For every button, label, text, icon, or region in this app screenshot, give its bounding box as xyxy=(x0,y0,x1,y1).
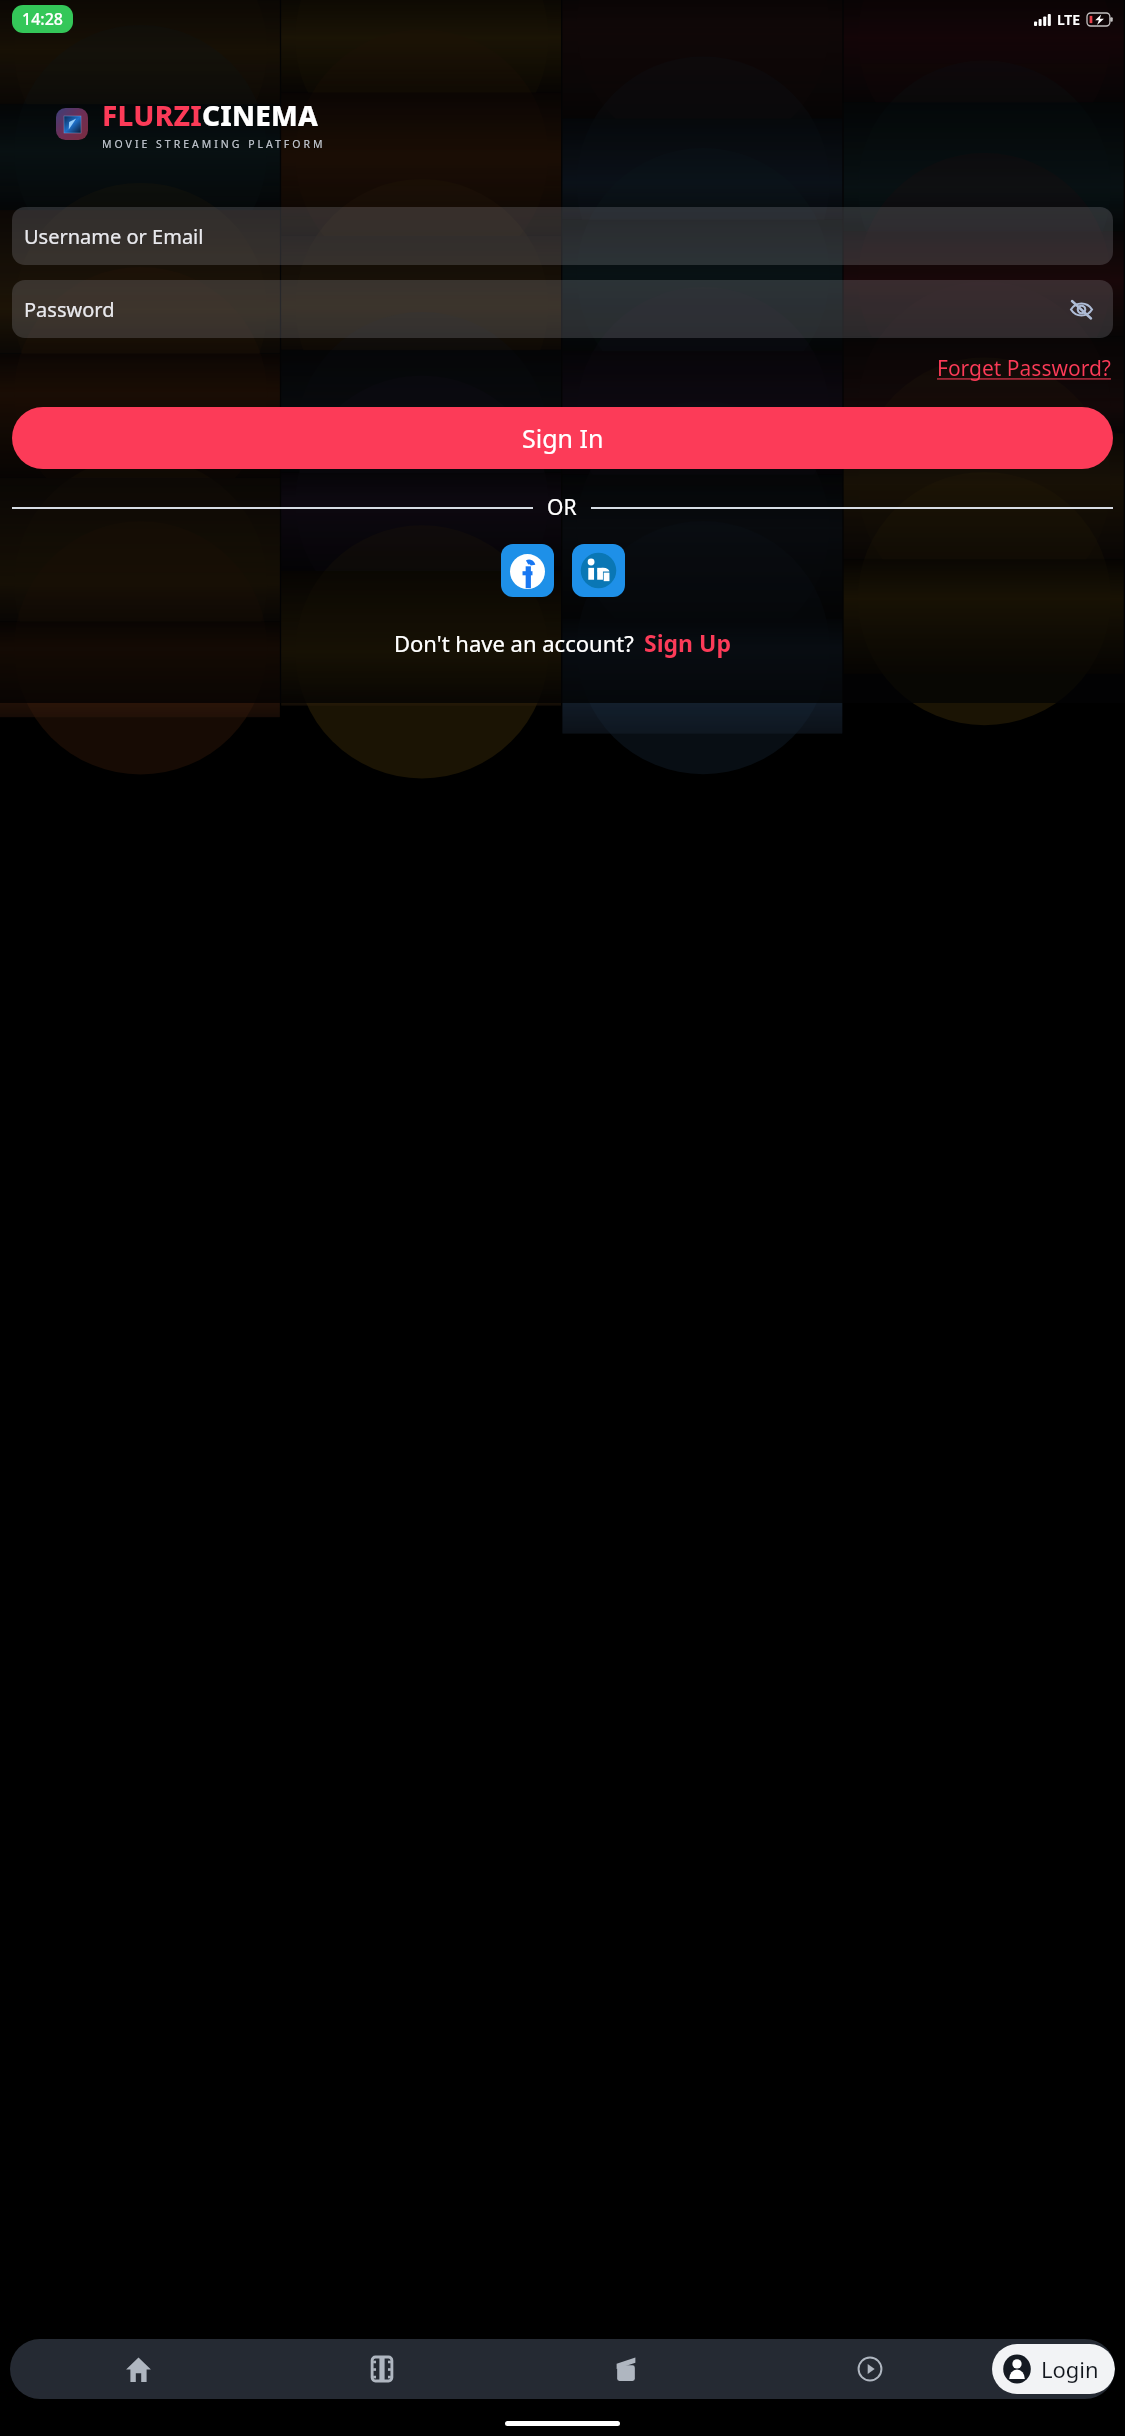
staticText: Username or Email xyxy=(24,223,204,250)
button[interactable]: Username or Email xyxy=(12,207,1113,265)
button[interactable]: Toggle password visibility xyxy=(1061,289,1101,329)
staticText: LTE xyxy=(1057,10,1081,29)
staticText: OR xyxy=(547,493,577,522)
staticText: Password xyxy=(24,296,115,323)
button[interactable]: Login xyxy=(992,2344,1115,2394)
button[interactable]: Sign Up xyxy=(644,627,731,658)
button[interactable]: Sign In xyxy=(12,407,1113,469)
button[interactable]: Shows xyxy=(504,2339,748,2399)
staticText: Don't have an account? xyxy=(394,628,634,658)
button[interactable]: Sign in with Facebook xyxy=(501,544,554,597)
staticText: 14:28 xyxy=(22,8,63,30)
staticText: Sign Up xyxy=(644,627,731,658)
button[interactable]: Forget Password? xyxy=(935,352,1113,385)
staticText: FLURZICINEMA xyxy=(102,96,319,134)
staticText: Sign In xyxy=(522,421,604,455)
button[interactable]: Sign in with LinkedIn xyxy=(572,544,625,597)
button[interactable]: Movies xyxy=(260,2339,504,2399)
staticText: MOVIE STREAMING PLATFORM xyxy=(102,137,326,151)
staticText: Login xyxy=(1041,2354,1099,2384)
button[interactable]: Home xyxy=(16,2339,260,2399)
button[interactable]: Live xyxy=(748,2339,992,2399)
staticText: Forget Password? xyxy=(937,354,1111,383)
button[interactable]: Password xyxy=(12,280,1113,338)
